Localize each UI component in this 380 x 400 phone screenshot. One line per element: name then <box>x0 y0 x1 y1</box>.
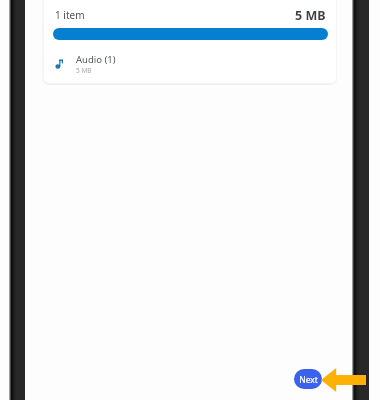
staticText: Audio (1) <box>76 53 116 66</box>
staticText: 5 MB <box>76 66 92 75</box>
button[interactable]: Audio file <box>44 52 336 76</box>
staticText: 5 MB <box>295 7 326 24</box>
other: Arrow pointing to Next <box>321 368 366 392</box>
staticText: Next <box>299 374 318 386</box>
other: Audio file <box>55 59 63 69</box>
staticText: 1 item <box>55 8 85 22</box>
button[interactable]: Next <box>294 369 322 389</box>
